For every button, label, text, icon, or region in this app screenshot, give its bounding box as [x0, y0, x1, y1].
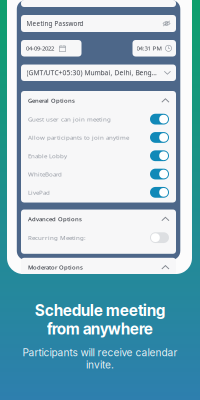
staticText: 04-09-2022 — [26, 44, 54, 52]
button[interactable]: Meeting Password — [21, 15, 176, 32]
button[interactable]: 04:31 PM — [132, 40, 176, 56]
staticText: from anywhere — [47, 320, 153, 338]
staticText: (GMT/UTC+05:30) Mumbai, Delhi, Beng… — [26, 68, 156, 77]
button[interactable]: Guest user can join meeting — [21, 110, 176, 128]
button[interactable]: 04-09-2022 — [21, 40, 81, 56]
staticText: Advanced Options — [28, 215, 82, 223]
staticText: Meeting Password — [26, 19, 83, 28]
button[interactable]: WhiteBoard — [21, 165, 176, 183]
staticText: Recurring Meeting: — [28, 233, 86, 242]
staticText: WhiteBoard — [28, 170, 62, 178]
staticText: Participants will receive calendar — [22, 346, 177, 359]
button[interactable]: Enable Lobby — [21, 147, 176, 165]
button[interactable]: General Options — [21, 91, 176, 110]
staticText: Schedule meeting — [35, 301, 165, 320]
button[interactable]: Allow participants to join anytime — [21, 128, 176, 147]
button[interactable]: Recurring Meeting: — [21, 228, 176, 247]
staticText: General Options — [28, 96, 75, 104]
staticText: 04:31 PM — [136, 44, 161, 52]
staticText: Allow participants to join anytime — [28, 133, 129, 142]
button[interactable]: (GMT/UTC+05:30) Mumbai, Delhi, Beng… — [21, 64, 176, 81]
staticText: Enable Lobby — [28, 152, 67, 160]
staticText: invite. — [86, 359, 114, 371]
staticText: Guest user can join meeting — [28, 115, 111, 123]
staticText: Moderator Options — [28, 263, 83, 271]
button[interactable]: Advanced Options — [21, 209, 176, 228]
button[interactable]: LivePad — [21, 183, 176, 201]
staticText: LivePad — [28, 188, 50, 197]
button[interactable]: Moderator Options — [21, 258, 176, 277]
